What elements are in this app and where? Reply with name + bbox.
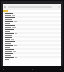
button[interactable] — [3, 26, 61, 28]
button[interactable] — [3, 12, 61, 14]
button[interactable] — [3, 32, 61, 34]
button[interactable] — [3, 36, 61, 38]
button[interactable] — [3, 28, 61, 30]
button[interactable] — [3, 56, 61, 58]
button[interactable] — [3, 52, 61, 54]
button[interactable] — [3, 54, 61, 56]
button[interactable] — [3, 16, 61, 18]
button[interactable] — [3, 34, 61, 36]
button[interactable] — [3, 48, 61, 50]
button[interactable] — [3, 42, 61, 44]
button[interactable] — [3, 40, 61, 42]
button[interactable] — [3, 22, 61, 24]
button[interactable] — [3, 20, 61, 22]
button[interactable] — [3, 18, 61, 20]
button[interactable] — [3, 38, 61, 40]
button[interactable] — [3, 24, 61, 26]
button[interactable] — [3, 50, 61, 52]
button[interactable] — [3, 46, 61, 48]
button[interactable] — [3, 44, 61, 46]
button[interactable] — [3, 14, 61, 16]
button[interactable] — [3, 58, 61, 60]
button[interactable] — [3, 30, 61, 32]
